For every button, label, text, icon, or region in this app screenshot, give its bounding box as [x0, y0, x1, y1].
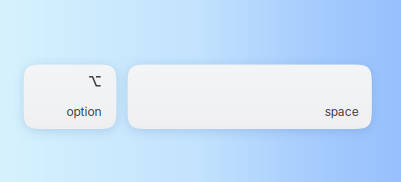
button[interactable]: option	[24, 64, 116, 129]
button[interactable]: space	[128, 64, 372, 129]
staticText: option	[66, 104, 101, 119]
staticText: space	[325, 104, 359, 119]
